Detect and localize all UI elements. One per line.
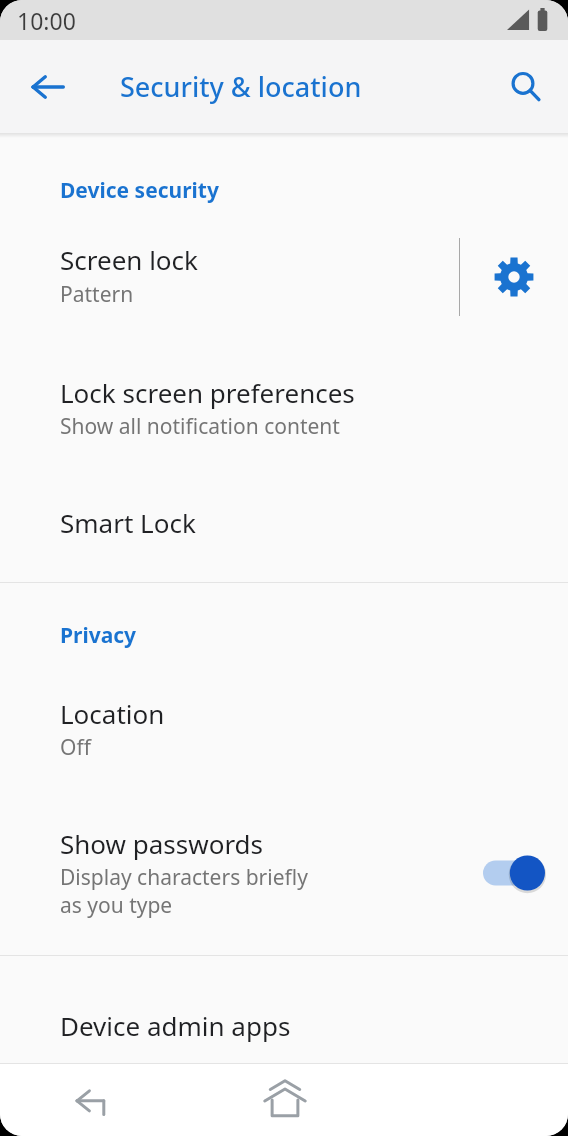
button[interactable]: Show passwords toggle: [460, 837, 568, 909]
staticText: Show passwords: [60, 826, 264, 861]
button[interactable]: Back: [20, 59, 76, 115]
button[interactable]: Screen lock: [0, 234, 459, 321]
staticText: 10:00: [17, 5, 76, 36]
button[interactable]: Location: [0, 682, 568, 776]
staticText: Device admin apps: [60, 1008, 291, 1043]
staticText: Pattern: [60, 280, 134, 309]
staticText: Show all notification content: [60, 412, 340, 441]
staticText: Off: [60, 733, 91, 762]
button[interactable]: Smart Lock: [0, 491, 568, 554]
button[interactable]: Search: [498, 59, 554, 115]
button[interactable]: Back: [0, 1064, 190, 1136]
staticText: Display characters briefly as you type: [60, 863, 308, 919]
staticText: Location: [60, 696, 165, 731]
staticText: Privacy: [60, 621, 137, 650]
staticText: Device security: [60, 176, 219, 205]
button[interactable]: Screen lock settings: [460, 233, 568, 321]
staticText: Lock screen preferences: [60, 375, 355, 410]
staticText: Screen lock: [60, 242, 198, 277]
button[interactable]: Lock screen preferences: [0, 361, 568, 455]
button[interactable]: Device admin apps: [0, 994, 568, 1057]
staticText: Security & location: [120, 68, 362, 105]
button[interactable]: Home: [190, 1064, 379, 1136]
button[interactable]: Show passwords: [0, 812, 568, 933]
staticText: Smart Lock: [60, 505, 196, 540]
